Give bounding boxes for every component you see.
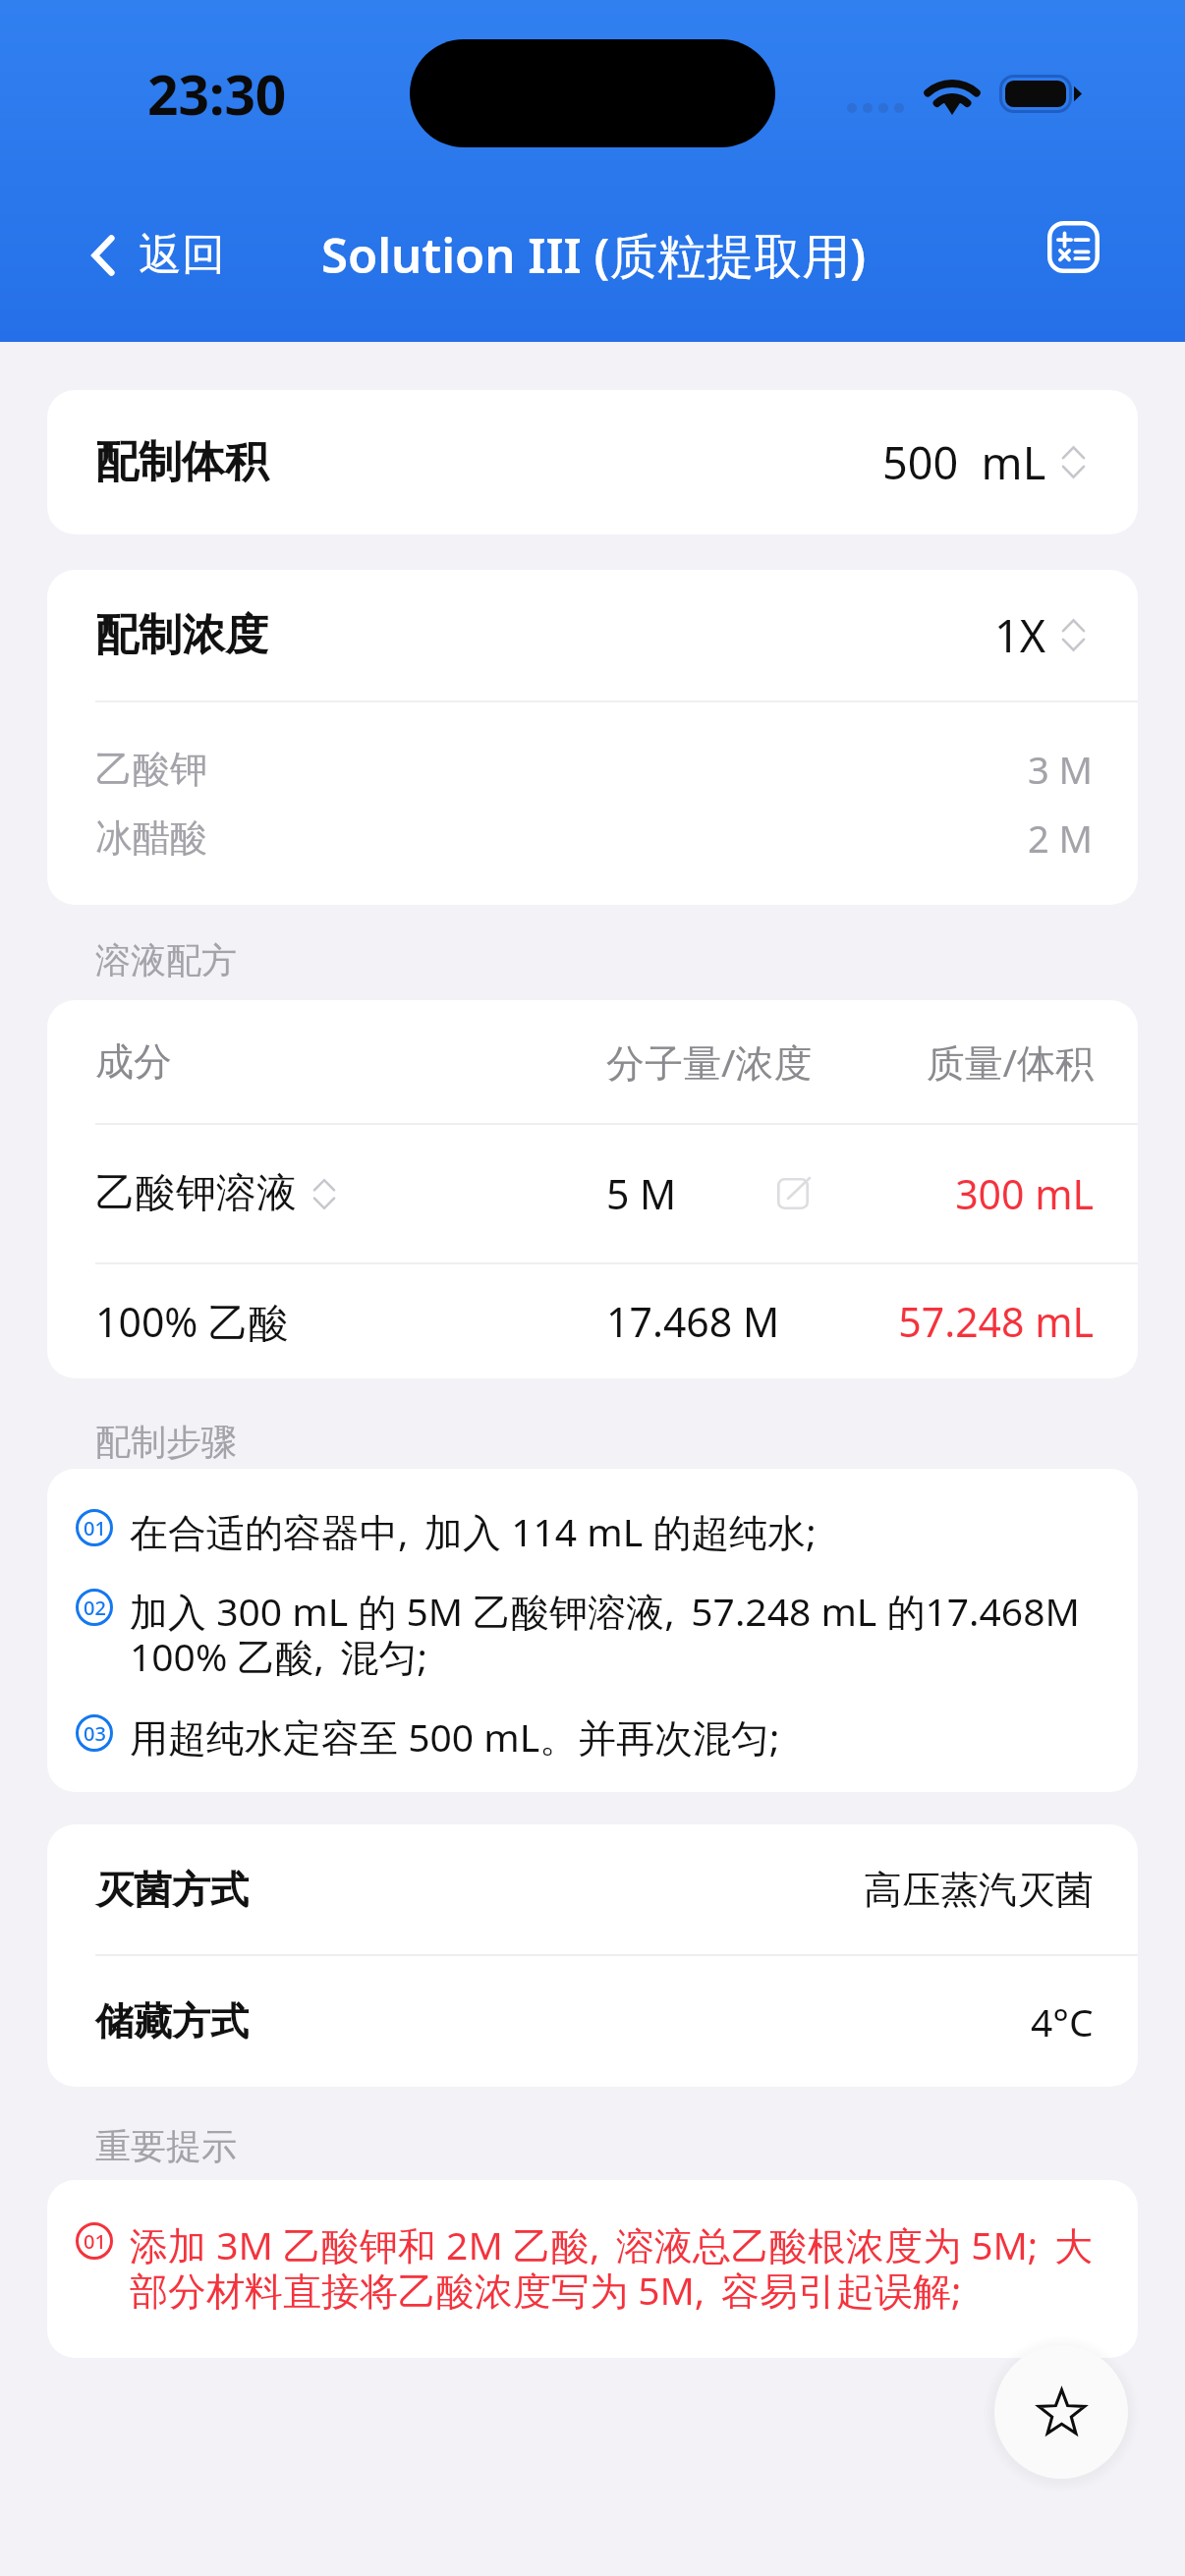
staticText: 100% 乙酸 xyxy=(95,1294,606,1349)
staticText: 01 xyxy=(84,1515,106,1541)
staticText: 成分 xyxy=(95,1037,606,1086)
staticText: 灭菌方式 xyxy=(95,1866,249,1914)
staticText: 03 xyxy=(84,1720,106,1747)
button[interactable]: Calculator xyxy=(1021,195,1125,299)
staticText: 57.248 mL xyxy=(848,1294,1094,1349)
staticText: 返回 xyxy=(139,228,225,282)
staticText: 17.468 M xyxy=(606,1294,848,1349)
button[interactable]: 100% 乙酸 xyxy=(47,1264,1138,1378)
staticText: 用超纯水定容至 500 mL。并再次混匀; xyxy=(130,1710,1099,1763)
staticText: 质量/体积 xyxy=(897,1036,1094,1088)
staticText: 配制体积 xyxy=(95,435,268,489)
button[interactable]: 配制浓度 xyxy=(47,570,1138,700)
staticText: 加入 300 mL 的 5M 乙酸钾溶液, 57.248 mL 的17.468M… xyxy=(130,1585,1099,1683)
staticText: 储藏方式 xyxy=(95,1997,249,2045)
button[interactable]: 配制体积 xyxy=(47,390,1138,534)
staticText: 冰醋酸 xyxy=(95,814,207,862)
staticText: 01 xyxy=(84,2228,106,2255)
staticText: 300 mL xyxy=(897,1166,1094,1221)
staticText: 重要提示 xyxy=(95,2124,237,2168)
button[interactable]: 乙酸钾溶液 xyxy=(47,1125,1138,1262)
button[interactable]: Back xyxy=(77,214,241,296)
staticText: 乙酸钾溶液 xyxy=(95,1168,297,1219)
staticText: 4°C xyxy=(1031,1995,1094,2047)
staticText: Solution III (质粒提取用) xyxy=(321,222,867,288)
staticText: 溶液配方 xyxy=(95,938,237,982)
staticText: 乙酸钾 xyxy=(95,746,207,793)
staticText: 在合适的容器中, 加入 114 mL 的超纯水; xyxy=(130,1505,1099,1557)
staticText: 3 M xyxy=(1028,744,1094,795)
staticText: 1X xyxy=(994,605,1046,665)
staticText: 添加 3M 乙酸钾和 2M 乙酸, 溶液总乙酸根浓度为 5M; 大部分材料直接将… xyxy=(130,2218,1108,2317)
staticText: 23:30 xyxy=(147,57,287,131)
staticText: 02 xyxy=(84,1595,106,1621)
staticText: 分子量/浓度 xyxy=(606,1036,897,1088)
button[interactable]: Favorite xyxy=(994,2345,1128,2479)
staticText: 5 M xyxy=(606,1166,677,1221)
staticText: 500 mL xyxy=(882,432,1046,492)
staticText: 配制步骤 xyxy=(95,1420,237,1464)
staticText: 配制浓度 xyxy=(95,608,268,662)
staticText: 高压蒸汽灭菌 xyxy=(864,1866,1094,1914)
staticText: 2 M xyxy=(1028,812,1094,864)
